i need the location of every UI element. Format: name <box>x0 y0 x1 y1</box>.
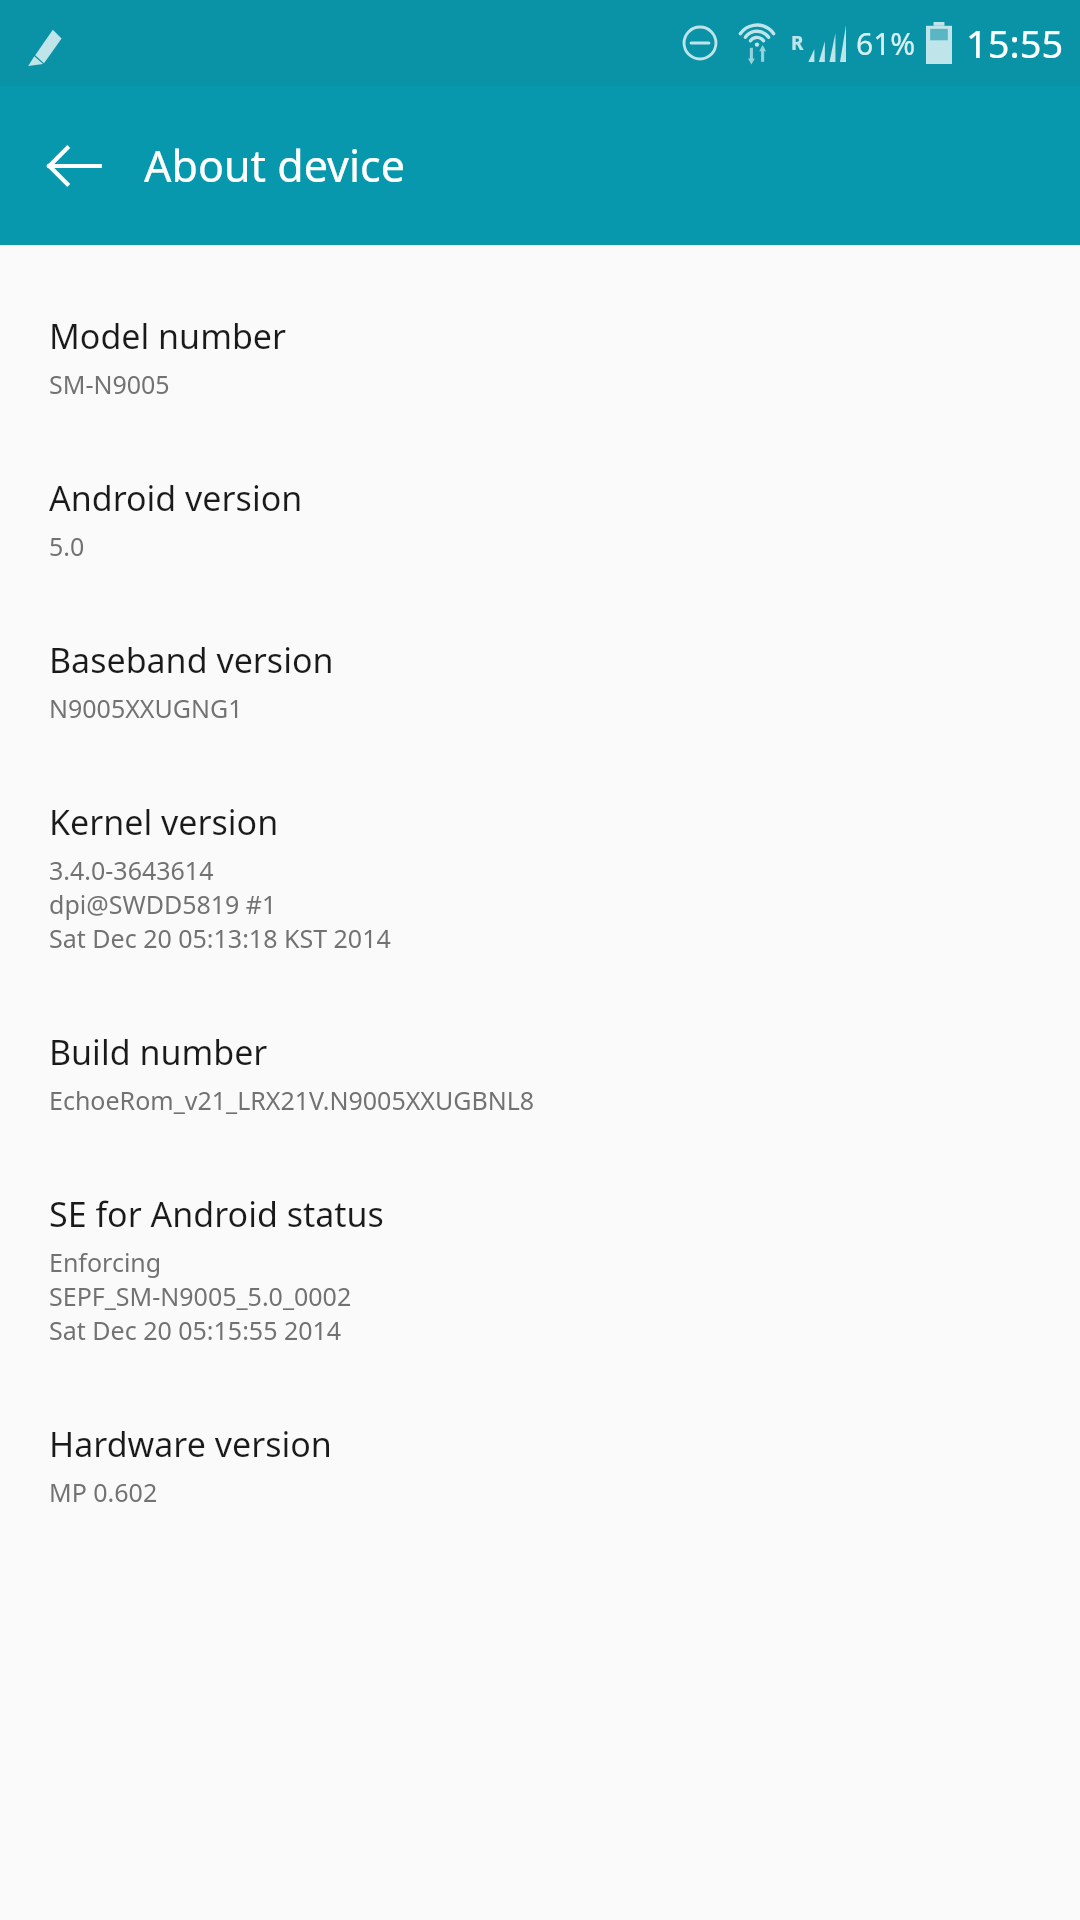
staticText: N9005XXUGNG1 <box>49 691 243 725</box>
staticText: Kernel version <box>49 799 279 845</box>
staticText: SE for Android status <box>49 1191 384 1237</box>
staticText: R <box>791 30 804 56</box>
staticText: 5.0 <box>49 529 85 563</box>
button[interactable]: Baseband version <box>0 631 1080 793</box>
staticText: Enforcing <box>49 1245 162 1279</box>
staticText: Baseband version <box>49 637 334 683</box>
staticText: Sat Dec 20 05:13:18 KST 2014 <box>49 921 391 955</box>
staticText: Android version <box>49 475 303 521</box>
staticText: 3.4.0-3643614 <box>49 853 214 887</box>
button[interactable]: SE for Android status <box>0 1185 1080 1415</box>
staticText: 61% <box>856 23 916 64</box>
button[interactable]: Model number <box>0 307 1080 469</box>
staticText: 15:55 <box>966 17 1064 69</box>
staticText: Hardware version <box>49 1421 332 1467</box>
staticText: SM-N9005 <box>49 367 170 401</box>
staticText: SEPF_SM-N9005_5.0_0002 <box>49 1279 352 1313</box>
staticText: About device <box>144 136 405 195</box>
button[interactable]: Build number <box>0 1023 1080 1185</box>
staticText: EchoeRom_v21_LRX21V.N9005XXUGBNL8 <box>49 1083 535 1117</box>
button[interactable]: Android version <box>0 469 1080 631</box>
staticText: dpi@SWDD5819 #1 <box>49 887 277 921</box>
button[interactable]: Kernel version <box>0 793 1080 1023</box>
staticText: Build number <box>49 1029 268 1075</box>
staticText: Sat Dec 20 05:15:55 2014 <box>49 1313 342 1347</box>
button[interactable]: Back <box>38 130 110 202</box>
button[interactable]: Hardware version <box>0 1415 1080 1577</box>
staticText: MP 0.602 <box>49 1475 158 1509</box>
staticText: Model number <box>49 313 287 359</box>
